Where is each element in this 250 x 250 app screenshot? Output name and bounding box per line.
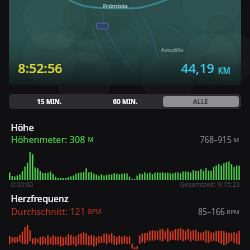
staticText: Astudillo (161, 46, 184, 53)
button[interactable]: 60 MIN. (87, 96, 163, 107)
staticText: Herzfrequenz (11, 192, 69, 204)
staticText: Frómista (103, 2, 128, 10)
staticText: 85–166 (198, 206, 225, 217)
staticText: M (232, 136, 240, 144)
staticText: M (86, 135, 94, 144)
button[interactable]: ALLE (163, 96, 239, 107)
staticText: 44,19 (181, 59, 215, 77)
staticText: 0:00:00 (11, 180, 34, 189)
staticText: Gesamtzeit: 9:15:23 (180, 180, 240, 189)
staticText: Höhenmeter: 308 (11, 133, 86, 145)
staticText: 8:52:56 (18, 59, 63, 77)
staticText: Durchschnitt: 121 (11, 205, 86, 217)
staticText: Höhe (11, 121, 34, 133)
staticText: 15 MIN. (37, 97, 62, 106)
staticText: BPM (86, 207, 102, 216)
button[interactable]: Route map (9, 0, 241, 85)
staticText: KM (218, 65, 231, 76)
staticText: 768–915 (200, 134, 232, 145)
staticText: 60 MIN. (113, 97, 138, 106)
staticText: ALLE (193, 97, 209, 106)
staticText: BPM (225, 208, 240, 216)
button[interactable]: 15 MIN. (11, 96, 87, 107)
